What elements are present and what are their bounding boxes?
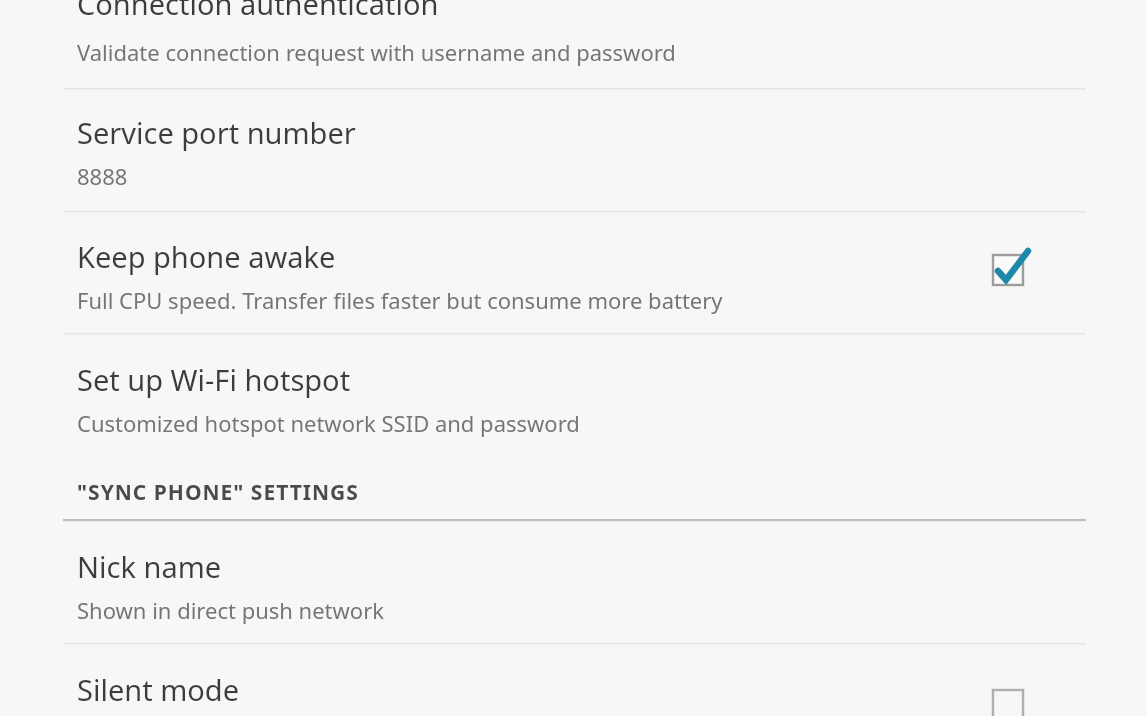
button[interactable] (0, 90, 1146, 211)
button[interactable]: Silent mode, unchecked (0, 645, 1146, 716)
staticText: 8888 (77, 161, 128, 191)
staticText: Set up Wi-Fi hotspot (77, 360, 351, 399)
button[interactable] (0, 521, 1146, 643)
staticText: Nick name (77, 547, 222, 586)
button[interactable] (0, 334, 1146, 452)
staticText: Customized hotspot network SSID and pass… (77, 408, 580, 438)
button[interactable] (0, 0, 1146, 88)
staticText: Silent mode (77, 670, 240, 709)
button[interactable]: Keep phone awake, checked (0, 212, 1146, 333)
staticText: Connection authentication (77, 0, 439, 23)
staticText: Keep phone awake (77, 237, 336, 276)
staticText: Shown in direct push network (77, 595, 384, 625)
staticText: "SYNC PHONE" SETTINGS (77, 478, 359, 507)
staticText: Service port number (77, 113, 356, 152)
staticText: Full CPU speed. Transfer files faster bu… (77, 285, 723, 315)
staticText: Validate connection request with usernam… (77, 37, 676, 67)
